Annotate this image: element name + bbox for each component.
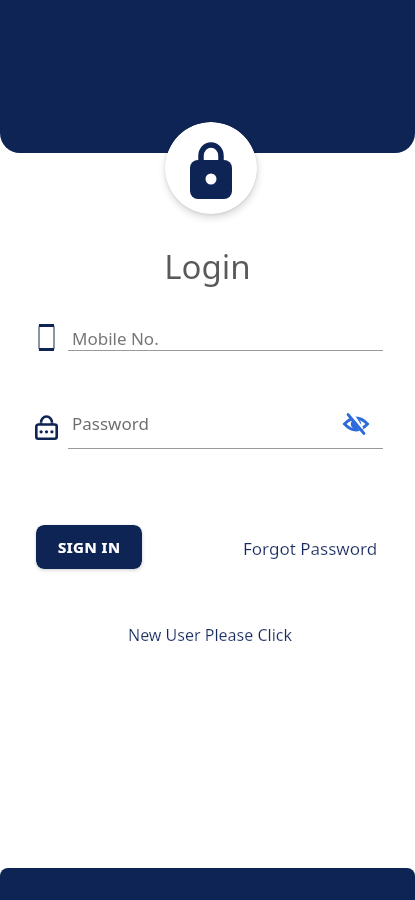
button[interactable]: [68, 318, 383, 352]
button[interactable]: SIGN IN: [36, 525, 142, 569]
button[interactable]: [68, 408, 338, 450]
button[interactable]: Forgot Password: [240, 535, 380, 561]
staticText: Forgot Password: [243, 537, 378, 560]
staticText: New User Please Click: [128, 624, 293, 646]
staticText: Mobile No.: [72, 327, 159, 350]
staticText: Password: [72, 412, 149, 435]
staticText: Login: [0, 244, 415, 289]
button[interactable]: New User Please Click: [110, 622, 310, 648]
button[interactable]: [343, 411, 369, 437]
staticText: SIGN IN: [58, 537, 121, 557]
